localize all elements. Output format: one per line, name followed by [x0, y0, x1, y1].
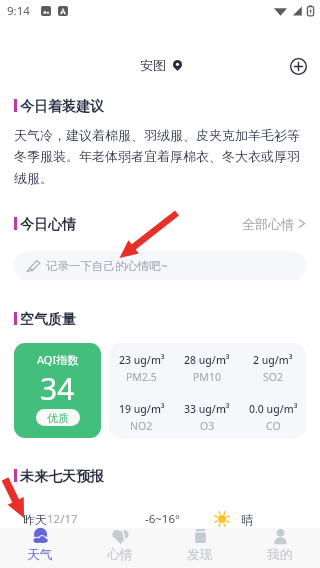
staticText: 9:14: [7, 3, 30, 19]
staticText: 2 ug/m³: [253, 353, 293, 367]
button[interactable]: 发现: [160, 528, 240, 561]
staticText: 发现: [187, 547, 213, 561]
staticText: 天气冷，建议着棉服、羽绒服、皮夹克加羊毛衫等冬季服装。年老体弱者宜着厚棉衣、冬大…: [14, 127, 306, 187]
button[interactable]: 心情: [80, 528, 160, 561]
staticText: 安图: [140, 57, 166, 73]
button[interactable]: 全部心情: [242, 216, 306, 231]
staticText: 0.0 ug/m³: [249, 402, 298, 416]
staticText: 今日心情: [20, 216, 76, 231]
staticText: 心情: [107, 547, 133, 561]
staticText: CO: [266, 419, 281, 433]
staticText: 34: [40, 368, 75, 409]
staticText: 23 ug/m³: [119, 353, 165, 367]
staticText: 33 ug/m³: [184, 402, 230, 416]
staticText: 今日着装建议: [20, 98, 104, 113]
staticText: 19 ug/m³: [119, 402, 165, 416]
button[interactable]: 记录一下自己的心情吧~: [14, 251, 306, 280]
staticText: -6~16°: [145, 511, 180, 527]
staticText: O3: [200, 419, 215, 433]
staticText: 昨天: [23, 512, 47, 527]
staticText: NO2: [130, 419, 153, 433]
staticText: 晴: [241, 512, 253, 527]
button[interactable]: Add city: [285, 53, 311, 79]
staticText: PM10: [193, 370, 221, 384]
button[interactable]: 安图: [140, 57, 182, 73]
button[interactable]: 昨天: [23, 510, 306, 528]
staticText: SO2: [263, 370, 283, 384]
button[interactable]: 我的: [240, 528, 320, 561]
staticText: 优质: [47, 411, 69, 425]
button[interactable]: 天气: [0, 528, 80, 561]
staticText: PM2.5: [126, 370, 157, 384]
staticText: 空气质量: [20, 311, 76, 326]
staticText: 未来七天预报: [20, 468, 104, 483]
staticText: 全部心情: [242, 216, 294, 231]
staticText: 12/17: [47, 511, 78, 527]
staticText: 记录一下自己的心情吧~: [46, 258, 168, 274]
staticText: AQI指数: [37, 352, 79, 367]
staticText: 天气: [27, 547, 53, 561]
staticText: 我的: [267, 547, 293, 561]
staticText: 28 ug/m³: [184, 353, 230, 367]
